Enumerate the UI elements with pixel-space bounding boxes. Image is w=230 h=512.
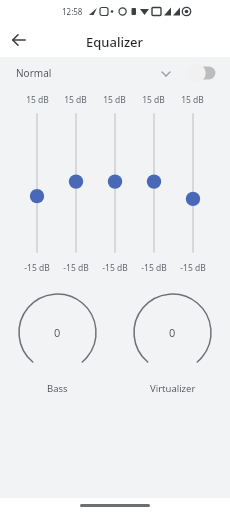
staticText: 15 dB [103, 94, 126, 106]
staticText: Normal [16, 66, 52, 80]
button[interactable]: 0 [0, 292, 115, 395]
staticText: -15 dB [24, 262, 50, 274]
button[interactable]: Enable equalizer [186, 63, 218, 83]
staticText: 0 [169, 325, 176, 340]
staticText: 15 dB [64, 94, 87, 106]
staticText: 0 [54, 325, 61, 340]
staticText: 15 dB [142, 94, 165, 106]
button[interactable]: Back [6, 27, 32, 53]
button[interactable]: 0 [115, 292, 230, 395]
staticText: -15 dB [141, 262, 167, 274]
staticText: Equalizer [86, 33, 144, 51]
staticText: Bass [47, 382, 68, 395]
staticText: -15 dB [102, 262, 128, 274]
button[interactable]: 15 dB [173, 88, 212, 280]
staticText: 12:58 [62, 6, 83, 17]
staticText: -15 dB [63, 262, 89, 274]
button[interactable]: 15 dB [95, 88, 134, 280]
button[interactable]: 15 dB [18, 88, 56, 280]
button[interactable]: 15 dB [56, 88, 95, 280]
staticText: Virtualizer [150, 382, 196, 395]
staticText: -15 dB [180, 262, 206, 274]
button[interactable]: 15 dB [134, 88, 173, 280]
staticText: 15 dB [181, 94, 204, 106]
button[interactable]: Normal [0, 57, 230, 88]
staticText: 15 dB [26, 94, 49, 106]
